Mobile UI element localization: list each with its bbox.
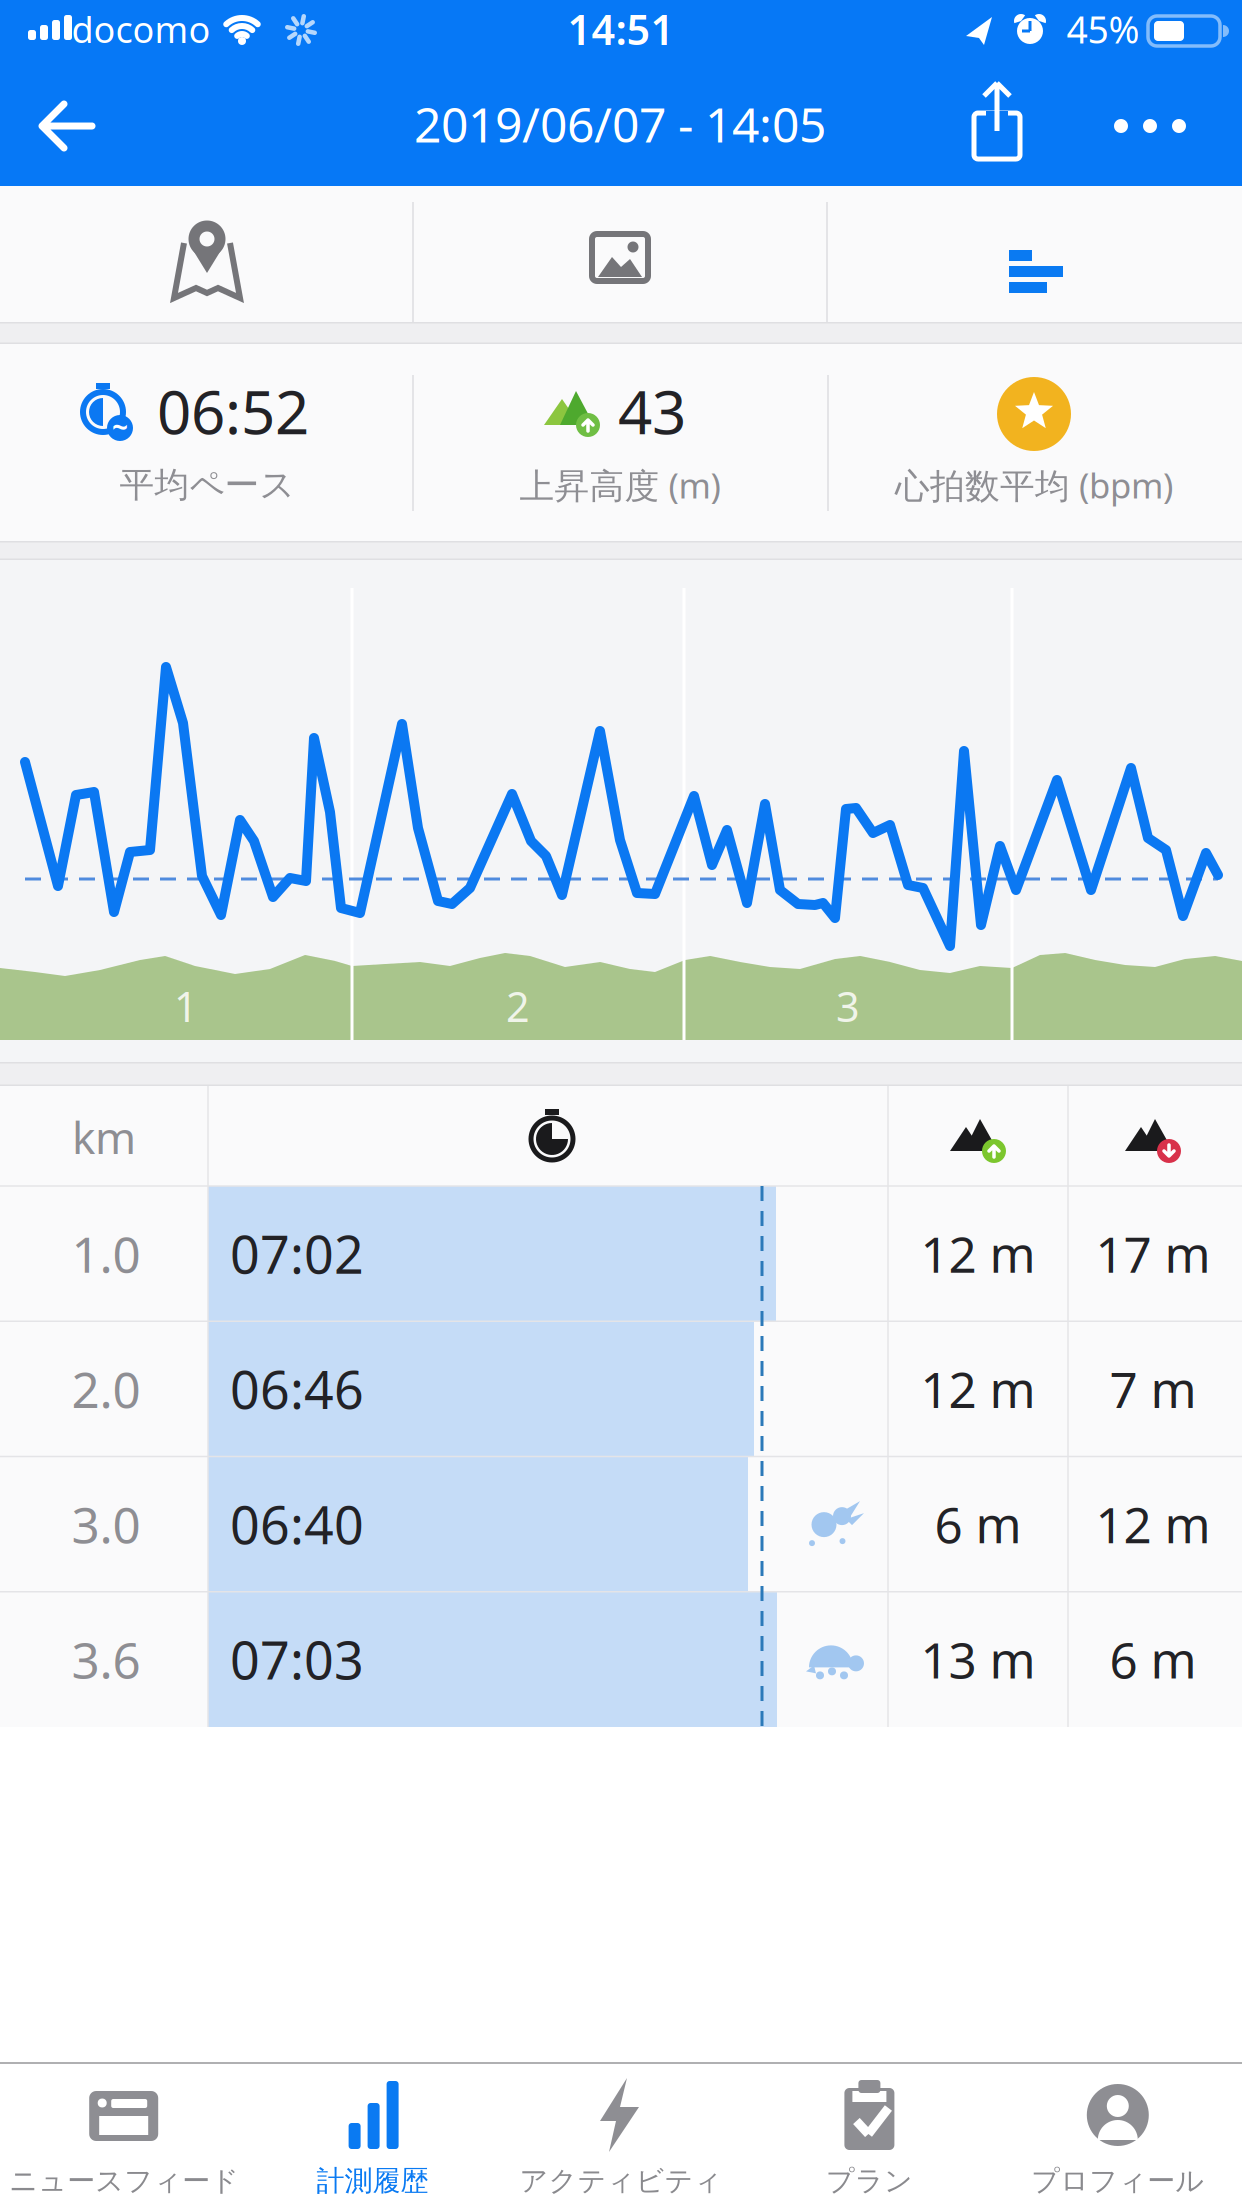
staticText: 計測履歴 — [317, 2164, 429, 2198]
staticText: 1 — [174, 979, 198, 1033]
button[interactable]: ニュースフィード — [0, 2065, 248, 2205]
button[interactable]: Statistics — [965, 199, 1105, 309]
staticText: 3.6 — [71, 1627, 140, 1692]
staticText: 43 — [618, 371, 686, 451]
button[interactable]: Map — [137, 197, 277, 307]
staticText: 12 m — [920, 1356, 1035, 1422]
button[interactable]: 計測履歴 — [249, 2065, 497, 2205]
staticText: 12 m — [920, 1221, 1035, 1286]
staticText: ニュースフィード — [9, 2164, 239, 2198]
staticText: ~ — [112, 408, 128, 446]
staticText: 上昇高度 (m) — [519, 462, 720, 508]
staticText: 13 m — [920, 1627, 1035, 1692]
staticText: 平均ペース — [119, 464, 294, 506]
staticText: 6 m — [1109, 1627, 1196, 1692]
button[interactable]: プラン — [745, 2065, 993, 2205]
button[interactable]: プロフィール — [994, 2065, 1242, 2205]
button[interactable]: Share — [966, 79, 1028, 165]
staticText: 07:02 — [230, 1219, 364, 1288]
staticText: 2 — [506, 979, 530, 1033]
staticText: 14:51 — [567, 2, 674, 56]
staticText: 3.0 — [71, 1491, 140, 1557]
staticText: km — [72, 1108, 136, 1166]
staticText: 1.0 — [71, 1221, 140, 1286]
staticText: 17 m — [1095, 1221, 1210, 1286]
staticText: プラン — [826, 2164, 913, 2198]
staticText: プロフィール — [1031, 2164, 1204, 2198]
staticText: アクティビティ — [519, 2164, 722, 2198]
staticText: 45% — [1066, 4, 1139, 54]
staticText: 2.0 — [71, 1356, 140, 1422]
staticText: 06:52 — [157, 371, 309, 451]
staticText: 07:03 — [230, 1625, 364, 1694]
staticText: 6 m — [934, 1491, 1021, 1557]
staticText: 心拍数平均 (bpm) — [895, 462, 1173, 508]
button[interactable]: アクティビティ — [497, 2065, 745, 2205]
button[interactable]: Photos — [550, 199, 690, 309]
staticText: docomo — [71, 5, 210, 53]
staticText: 2019/06/07 - 14:05 — [414, 92, 826, 156]
staticText: 7 m — [1109, 1356, 1196, 1422]
button[interactable]: Back — [22, 96, 112, 156]
staticText: 3 — [836, 979, 860, 1033]
staticText: 06:40 — [230, 1490, 364, 1559]
staticText: 06:46 — [230, 1354, 364, 1423]
staticText: 12 m — [1095, 1491, 1210, 1557]
button[interactable]: More — [1105, 112, 1195, 140]
